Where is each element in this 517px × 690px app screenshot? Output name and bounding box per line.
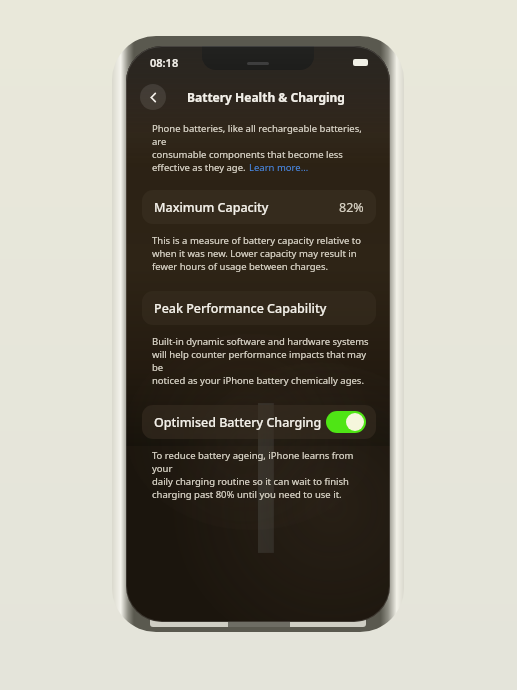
staticText: This is a measure of battery capacity re… xyxy=(152,234,361,247)
staticText: 82% xyxy=(339,199,364,216)
staticText: Battery Health & Charging xyxy=(187,89,345,105)
staticText: fewer hours of usage between charges. xyxy=(152,260,329,273)
button[interactable]: Optimised Battery Charging xyxy=(142,405,376,439)
staticText: will help counter performance impacts th… xyxy=(152,348,370,374)
staticText: when it was new. Lower capacity may resu… xyxy=(152,247,357,260)
staticText: 08:18 xyxy=(150,55,179,70)
staticText: daily charging routine so it can wait to… xyxy=(152,475,349,488)
staticText: effective as they age. xyxy=(152,161,249,174)
staticText: consumable components that become less xyxy=(152,148,343,161)
staticText: Maximum Capacity xyxy=(154,199,269,216)
staticText: charging past 80% until you need to use … xyxy=(152,488,342,501)
staticText: Phone batteries, like all rechargeable b… xyxy=(152,122,368,148)
staticText: Built-in dynamic software and hardware s… xyxy=(152,335,369,348)
button[interactable]: Back xyxy=(140,84,166,110)
button[interactable]: Maximum Capacity xyxy=(142,190,376,224)
button[interactable]: Optimised Battery Charging toggle, on xyxy=(326,411,366,433)
button[interactable]: Learn more… xyxy=(249,161,309,174)
staticText: To reduce battery ageing, iPhone learns … xyxy=(152,449,372,475)
staticText: Peak Performance Capability xyxy=(154,300,327,317)
staticText: noticed as your iPhone battery chemicall… xyxy=(152,374,364,387)
staticText: Optimised Battery Charging xyxy=(154,414,322,431)
button[interactable]: Peak Performance Capability xyxy=(142,291,376,325)
